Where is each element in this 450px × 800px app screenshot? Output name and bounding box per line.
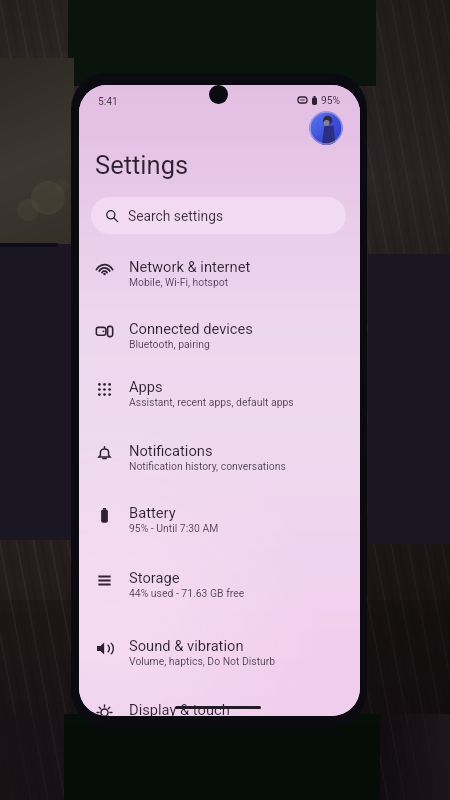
- staticText: 95% - Until 7:30 AM: [129, 522, 219, 534]
- staticText: Settings: [95, 150, 189, 180]
- staticText: 95%: [321, 94, 341, 106]
- button[interactable]: Network & internet: [79, 258, 360, 304]
- button[interactable]: Display & touch: [79, 701, 360, 716]
- staticText: Volume, haptics, Do Not Disturb: [129, 655, 276, 667]
- staticText: Connected devices: [129, 320, 253, 337]
- button[interactable]: Account: [309, 111, 343, 145]
- staticText: 44% used - 71.63 GB free: [129, 587, 245, 599]
- button[interactable]: Notifications: [79, 442, 360, 488]
- staticText: Notifications: [129, 442, 213, 459]
- staticText: Sound & vibration: [129, 637, 244, 654]
- staticText: Apps: [129, 378, 163, 395]
- button[interactable]: Apps: [79, 378, 360, 424]
- button[interactable]: Search settings: [91, 197, 346, 234]
- button[interactable]: Battery: [79, 504, 360, 550]
- staticText: Storage: [129, 569, 180, 586]
- staticText: Battery: [129, 504, 176, 521]
- button[interactable]: Sound & vibration: [79, 637, 360, 683]
- button[interactable]: Connected devices: [79, 320, 360, 366]
- staticText: Mobile, Wi-Fi, hotspot: [129, 276, 229, 288]
- staticText: Bluetooth, pairing: [129, 338, 210, 350]
- staticText: Assistant, recent apps, default apps: [129, 396, 294, 408]
- staticText: Display & touch: [129, 701, 230, 716]
- staticText: 5:41: [98, 95, 118, 107]
- staticText: Notification history, conversations: [129, 460, 286, 472]
- staticText: Search settings: [128, 208, 224, 224]
- staticText: Network & internet: [129, 258, 251, 275]
- button[interactable]: Storage: [79, 569, 360, 615]
